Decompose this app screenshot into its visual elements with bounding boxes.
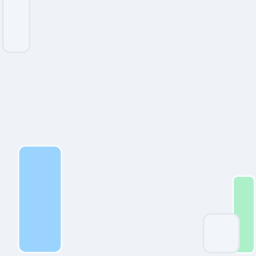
button[interactable]: Empty slot, column two [203,214,239,252]
button[interactable]: Green tile, right column [233,176,254,253]
button[interactable]: Blue tile, left column [18,146,61,253]
button[interactable]: Empty slot, column one [3,0,29,52]
